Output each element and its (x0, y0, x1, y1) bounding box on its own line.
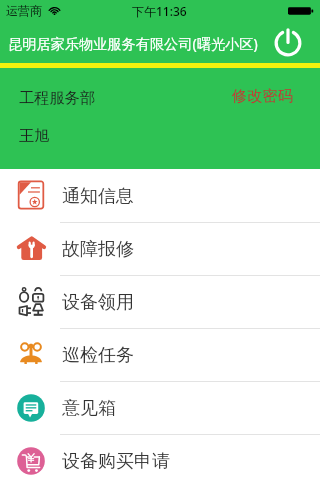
staticText: 设备购买申请 (62, 450, 170, 473)
staticText: 王旭 (19, 126, 50, 145)
button[interactable]: 故障报修 (0, 223, 320, 276)
staticText: 昆明居家乐物业服务有限公司(曙光小区) (8, 34, 258, 53)
button[interactable]: 意见箱 (0, 382, 320, 435)
staticText: 通知信息 (62, 185, 134, 208)
staticText: 运营商 (6, 3, 42, 18)
staticText: 工程服务部 (19, 88, 95, 107)
staticText: 下午11:36 (132, 3, 187, 19)
button[interactable]: 巡检任务 (0, 329, 320, 382)
button[interactable]: 通知信息 (0, 170, 320, 223)
staticText: 意见箱 (62, 397, 116, 420)
button[interactable]: 退出登录 (271, 26, 305, 60)
button[interactable]: 修改密码 (227, 80, 298, 111)
staticText: 巡检任务 (62, 344, 134, 367)
button[interactable]: 设备领用 (0, 276, 320, 329)
staticText: 修改密码 (232, 86, 293, 105)
staticText: 故障报修 (62, 238, 134, 261)
staticText: 设备领用 (62, 291, 134, 314)
button[interactable]: 设备购买申请 (0, 435, 320, 480)
